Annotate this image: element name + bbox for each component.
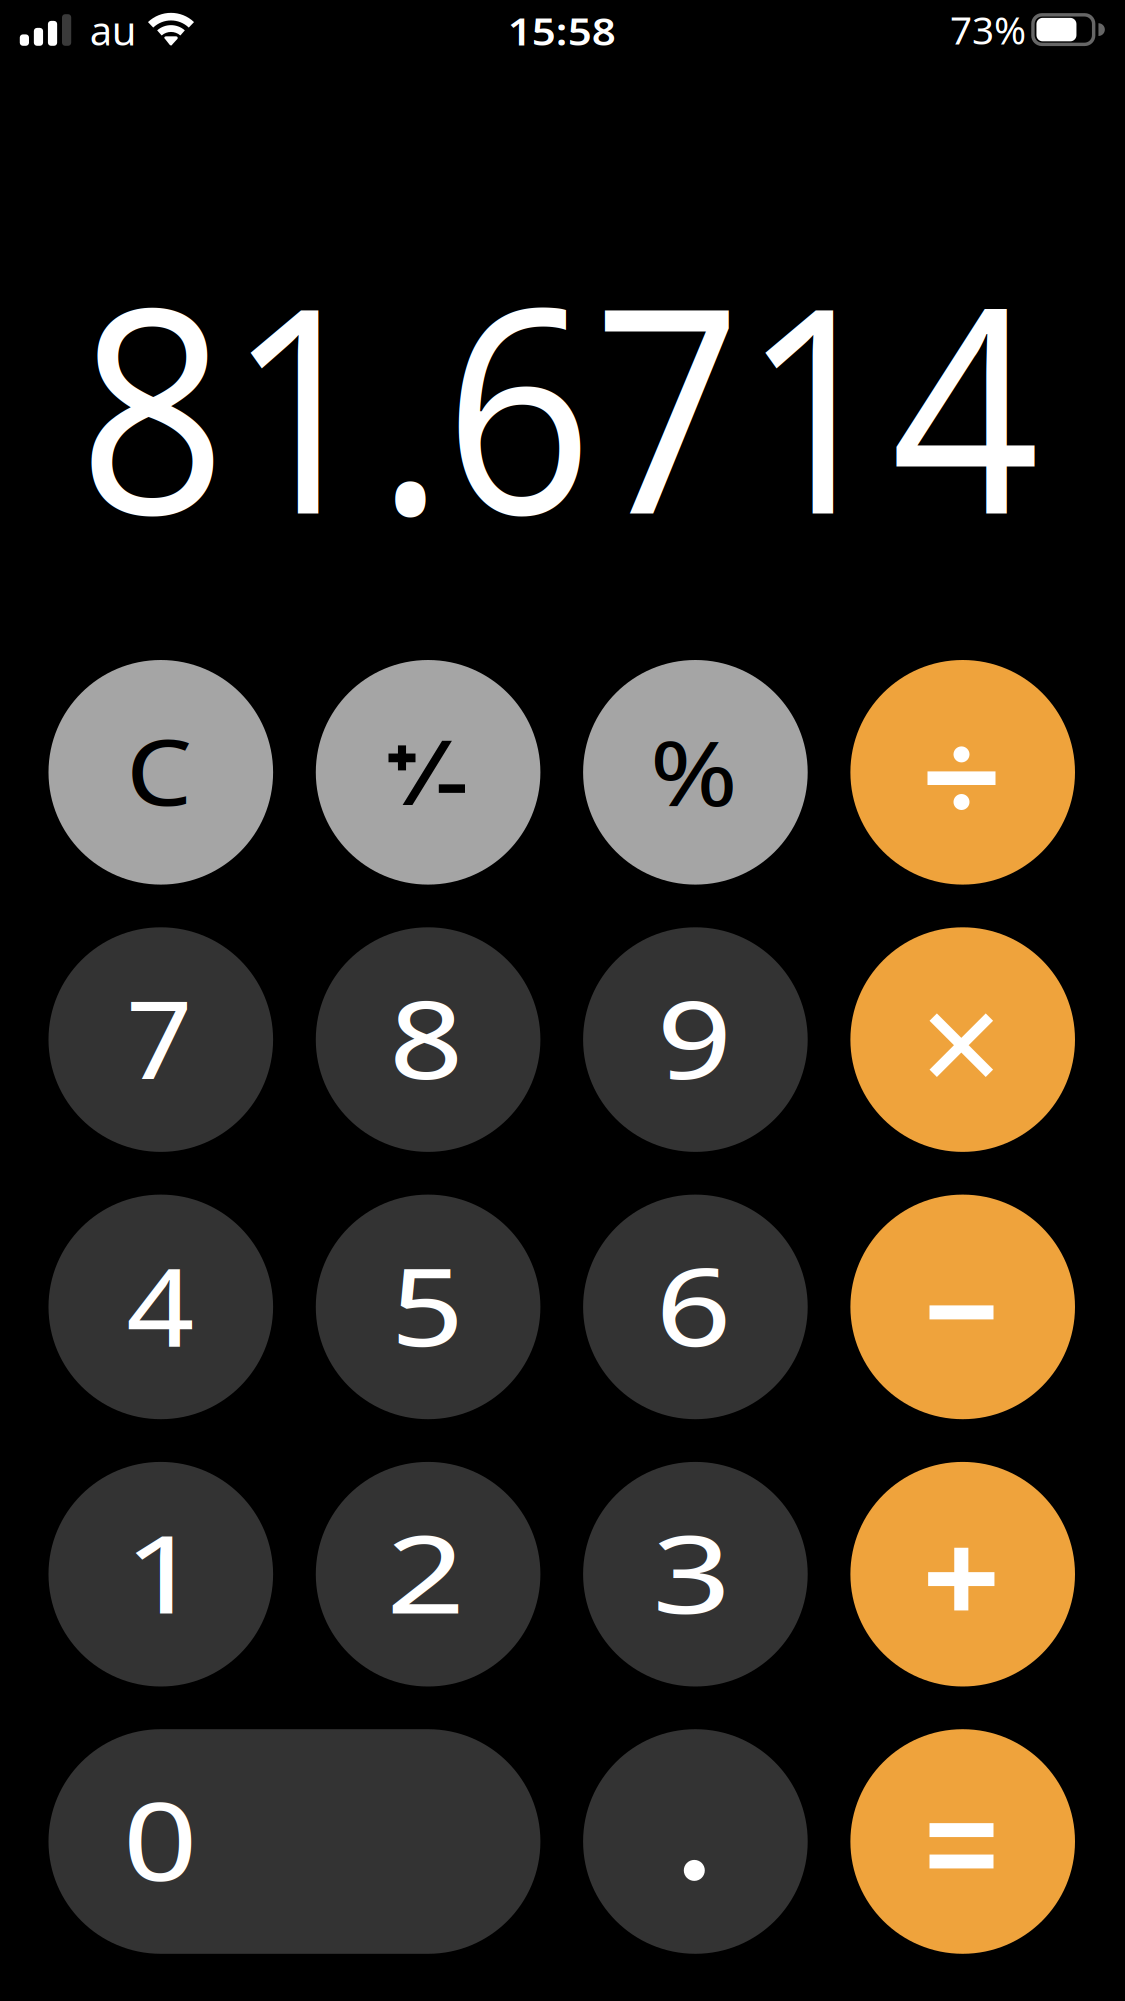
staticText: 7	[128, 962, 191, 1111]
button[interactable]: 9	[583, 927, 808, 1152]
button[interactable]: 4	[48, 1195, 273, 1419]
staticText: 0	[129, 1764, 192, 1913]
button[interactable]: 6	[583, 1195, 808, 1419]
staticText: 3	[660, 1497, 723, 1646]
button[interactable]: 8	[316, 927, 540, 1152]
button[interactable]: 2	[316, 1462, 540, 1686]
button[interactable]: Equals	[850, 1729, 1075, 1954]
button[interactable]: Minus	[850, 1195, 1075, 1419]
staticText: C	[129, 705, 190, 836]
button[interactable]: 7	[48, 927, 273, 1152]
staticText: 5	[396, 1230, 459, 1379]
button[interactable]: Percent	[583, 660, 808, 885]
staticText: %	[654, 705, 734, 836]
staticText: 9	[663, 962, 726, 1111]
staticText: 15:58	[512, 5, 611, 56]
staticText: au	[90, 3, 137, 56]
button[interactable]: 5	[316, 1195, 540, 1419]
button[interactable]: 0	[48, 1729, 540, 1954]
staticText: 8	[395, 962, 458, 1111]
button[interactable]: Divide	[850, 660, 1075, 885]
button[interactable]: Multiply	[850, 927, 1075, 1152]
button[interactable]: Decimal point	[583, 1729, 808, 1954]
button[interactable]: Clear	[48, 660, 273, 885]
button[interactable]: 1	[48, 1462, 273, 1686]
staticText: 1	[131, 1497, 194, 1646]
staticText: 73%	[950, 4, 1026, 55]
button[interactable]: 3	[583, 1462, 808, 1686]
staticText: 2	[394, 1497, 457, 1646]
staticText: 81.6714	[65, 221, 1053, 585]
button[interactable]: Plus	[850, 1462, 1075, 1686]
staticText: 4	[129, 1230, 192, 1379]
button[interactable]: Plus Minus	[316, 660, 540, 885]
staticText: 6	[662, 1230, 725, 1379]
